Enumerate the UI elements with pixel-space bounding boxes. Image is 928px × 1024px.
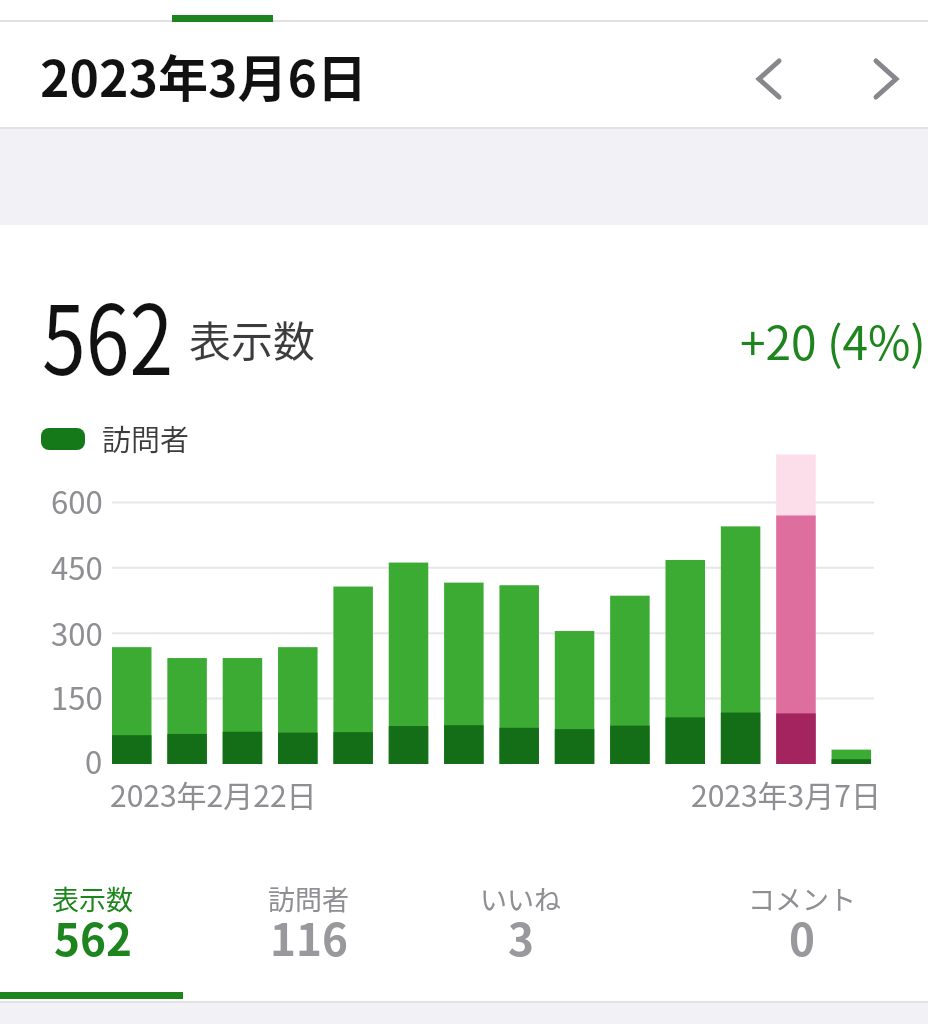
- button[interactable]: いいね: [410, 868, 630, 992]
- staticText: 116: [270, 905, 348, 969]
- staticText: 150: [51, 674, 103, 719]
- button[interactable]: コメント: [692, 868, 912, 992]
- button[interactable]: [846, 39, 926, 119]
- staticText: 表示数: [189, 308, 316, 369]
- staticText: 450: [51, 544, 103, 589]
- staticText: 訪問者: [102, 417, 190, 459]
- staticText: 300: [51, 610, 103, 655]
- staticText: いいね: [480, 879, 561, 918]
- staticText: 3: [508, 905, 534, 969]
- staticText: 0: [789, 905, 815, 969]
- staticText: 表示数: [52, 879, 133, 918]
- staticText: 2023年3月6日: [40, 39, 367, 111]
- button[interactable]: 表示数: [0, 868, 202, 992]
- staticText: コメント: [748, 879, 856, 918]
- staticText: 2023年3月7日: [691, 772, 881, 815]
- button[interactable]: 訪問者: [198, 868, 418, 992]
- staticText: 0: [85, 738, 103, 783]
- button[interactable]: [729, 39, 809, 119]
- staticText: 訪問者: [268, 879, 349, 918]
- staticText: 600: [51, 478, 103, 523]
- staticText: 2023年2月22日: [110, 772, 317, 815]
- staticText: +20 (4%): [740, 307, 926, 374]
- staticText: 562: [42, 264, 173, 403]
- staticText: 562: [54, 905, 132, 969]
